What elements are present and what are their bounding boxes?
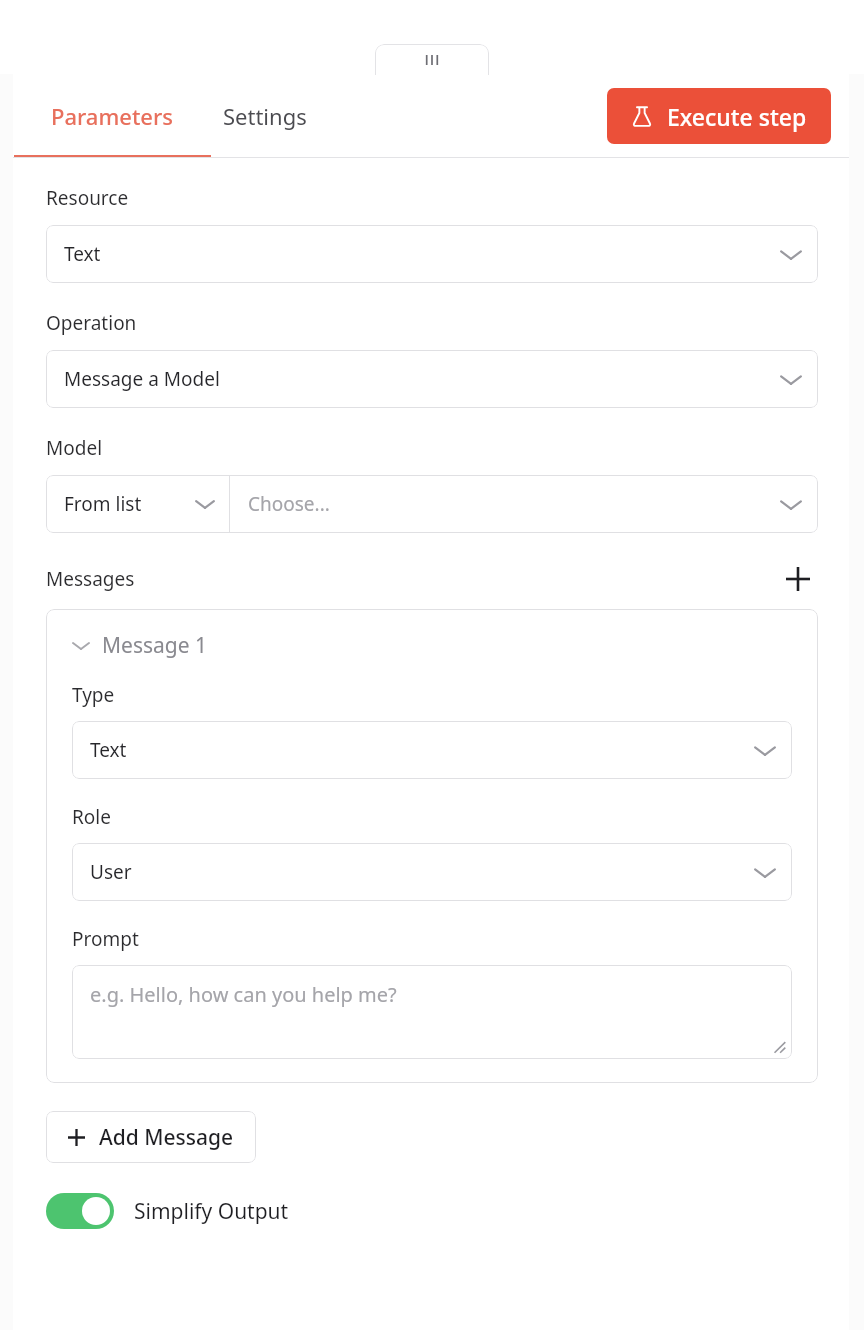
staticText: Operation	[46, 310, 137, 336]
staticText: Choose...	[248, 491, 780, 517]
staticText: Resource	[46, 185, 129, 211]
staticText: e.g. Hello, how can you help me?	[90, 981, 397, 1008]
staticText: Role	[72, 804, 111, 830]
staticText: Simplify Output	[134, 1197, 289, 1226]
button[interactable]: Simplify Output	[46, 1193, 289, 1229]
staticText: Execute step	[667, 101, 807, 132]
staticText: Text	[64, 241, 780, 267]
button[interactable]: Add message	[778, 559, 818, 599]
button[interactable]: Add Message	[46, 1111, 256, 1163]
staticText: Settings	[223, 101, 307, 131]
button[interactable]: Message a Model	[46, 350, 818, 408]
button[interactable]: From list	[46, 475, 229, 533]
staticText: Message 1	[102, 631, 208, 660]
staticText: Model	[46, 435, 103, 461]
button[interactable]: Text	[72, 721, 792, 779]
button[interactable]: User	[72, 843, 792, 901]
button[interactable]: Settings	[209, 74, 321, 158]
staticText: Text	[90, 737, 754, 763]
button[interactable]: e.g. Hello, how can you help me?	[72, 965, 792, 1059]
staticText: Messages	[46, 566, 135, 592]
staticText: Add Message	[99, 1123, 234, 1152]
staticText: Parameters	[51, 101, 173, 131]
button[interactable]: Message 1	[72, 631, 208, 660]
staticText: User	[90, 859, 754, 885]
staticText: Prompt	[72, 926, 139, 952]
button[interactable]: Resize panel	[375, 44, 489, 75]
button[interactable]: Choose...	[230, 475, 818, 533]
button[interactable]: Text	[46, 225, 818, 283]
staticText: From list	[64, 491, 195, 517]
staticText: Message a Model	[64, 366, 780, 392]
button[interactable]: Execute step	[607, 88, 831, 144]
staticText: Type	[72, 682, 115, 708]
button[interactable]: Parameters	[37, 74, 187, 158]
